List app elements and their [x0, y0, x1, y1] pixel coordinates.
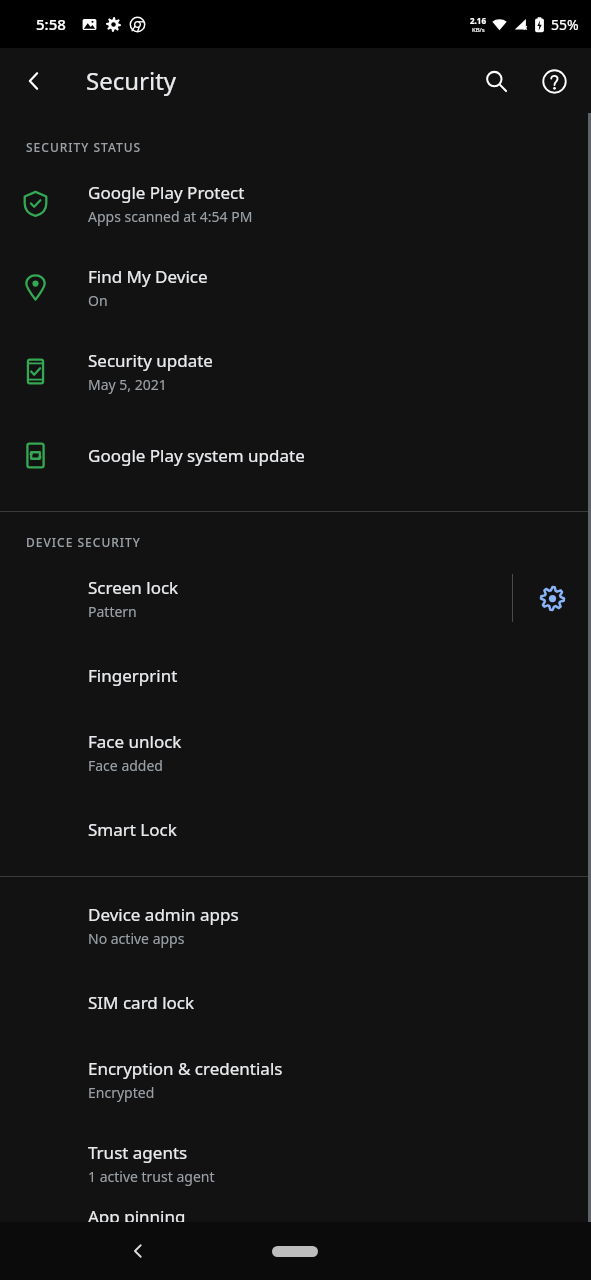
staticText: 5:58	[36, 14, 66, 34]
staticText: Security	[86, 64, 177, 97]
staticText: 2.16	[470, 15, 486, 26]
staticText: Find My Device	[88, 265, 208, 288]
button[interactable]: Smart Lock	[0, 794, 591, 864]
button[interactable]: App pinning	[0, 1205, 591, 1222]
button[interactable]: Fingerprint	[0, 640, 591, 710]
button[interactable]: Security update	[0, 329, 591, 413]
staticText: Encrypted	[88, 1083, 155, 1102]
staticText: Trust agents	[88, 1141, 188, 1164]
button[interactable]: Google Play Protect	[0, 161, 591, 245]
staticText: No active apps	[88, 929, 185, 948]
staticText: Google Play system update	[88, 444, 305, 467]
staticText: Face unlock	[88, 730, 182, 753]
button[interactable]: Face unlock	[0, 710, 591, 794]
button[interactable]: Find My Device	[0, 245, 591, 329]
button[interactable]: Device admin apps	[0, 883, 591, 967]
staticText: May 5, 2021	[88, 375, 167, 394]
staticText: Apps scanned at 4:54 PM	[88, 207, 253, 226]
staticText: Face added	[88, 756, 163, 775]
staticText: Encryption & credentials	[88, 1057, 283, 1080]
button[interactable]: Back	[118, 1231, 158, 1271]
button[interactable]: Help	[531, 58, 577, 104]
staticText: Security update	[88, 349, 213, 372]
button[interactable]: SIM card lock	[0, 967, 591, 1037]
staticText: KB/s	[472, 26, 485, 34]
button[interactable]: Screen lock	[0, 556, 512, 640]
button[interactable]: Google Play system update	[0, 413, 591, 497]
staticText: DEVICE SECURITY	[26, 534, 141, 550]
button[interactable]: Trust agents	[0, 1121, 591, 1205]
button[interactable]: Search	[473, 58, 519, 104]
staticText: App pinning	[88, 1205, 186, 1222]
staticText: 55%	[551, 15, 579, 34]
staticText: On	[88, 291, 108, 310]
staticText: Smart Lock	[88, 818, 177, 841]
staticText: Pattern	[88, 602, 137, 621]
button[interactable]: Back	[10, 57, 58, 105]
staticText: Fingerprint	[88, 664, 178, 687]
button[interactable]: Screen lock settings	[513, 556, 591, 640]
staticText: Screen lock	[88, 576, 179, 599]
staticText: Google Play Protect	[88, 181, 245, 204]
staticText: SIM card lock	[88, 991, 195, 1014]
staticText: Device admin apps	[88, 903, 239, 926]
staticText: SECURITY STATUS	[26, 139, 142, 155]
staticText: 1 active trust agent	[88, 1167, 215, 1186]
button[interactable]: Encryption & credentials	[0, 1037, 591, 1121]
button[interactable]: Home	[258, 1234, 332, 1269]
